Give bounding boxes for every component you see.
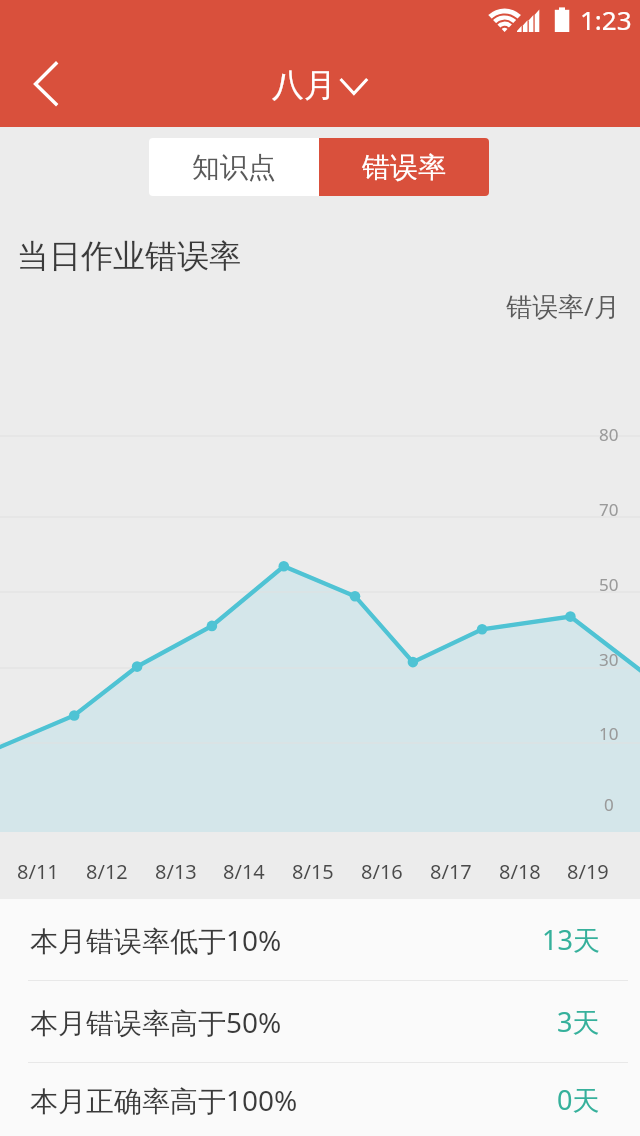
staticText: 本月错误率低于10%	[30, 921, 282, 959]
button[interactable]: 知识点	[149, 138, 319, 196]
staticText: 8/19	[567, 858, 609, 885]
staticText: 八月	[272, 65, 336, 105]
button[interactable]: Back	[14, 54, 74, 114]
staticText: 30	[599, 648, 619, 670]
staticText: 50	[599, 573, 619, 595]
staticText: 错误率	[362, 150, 446, 185]
staticText: 本月正确率高于100%	[30, 1081, 298, 1119]
staticText: 1:23	[580, 2, 632, 37]
staticText: 80	[599, 423, 619, 445]
staticText: 3天	[557, 1003, 600, 1040]
staticText: 错误率/月	[506, 288, 620, 324]
staticText: 13天	[542, 921, 600, 958]
staticText: 知识点	[192, 150, 276, 185]
staticText: 8/15	[292, 858, 334, 885]
staticText: 0	[604, 793, 614, 815]
staticText: 8/17	[430, 858, 472, 885]
button[interactable]: 本月错误率高于50%	[0, 981, 640, 1062]
staticText: 8/16	[361, 858, 403, 885]
button[interactable]: 八月	[264, 60, 376, 108]
staticText: 70	[599, 498, 619, 520]
button[interactable]: 错误率	[319, 138, 489, 196]
staticText: 8/11	[17, 858, 59, 885]
staticText: 当日作业错误率	[17, 236, 241, 276]
staticText: 8/12	[86, 858, 128, 885]
staticText: 0天	[557, 1081, 600, 1118]
staticText: 本月错误率高于50%	[30, 1003, 282, 1041]
button[interactable]: 本月正确率高于100%	[0, 1063, 640, 1136]
staticText: 8/18	[499, 858, 541, 885]
staticText: 8/14	[223, 858, 265, 885]
staticText: 10	[599, 722, 619, 744]
staticText: 8/13	[155, 858, 197, 885]
button[interactable]: 本月错误率低于10%	[0, 899, 640, 980]
